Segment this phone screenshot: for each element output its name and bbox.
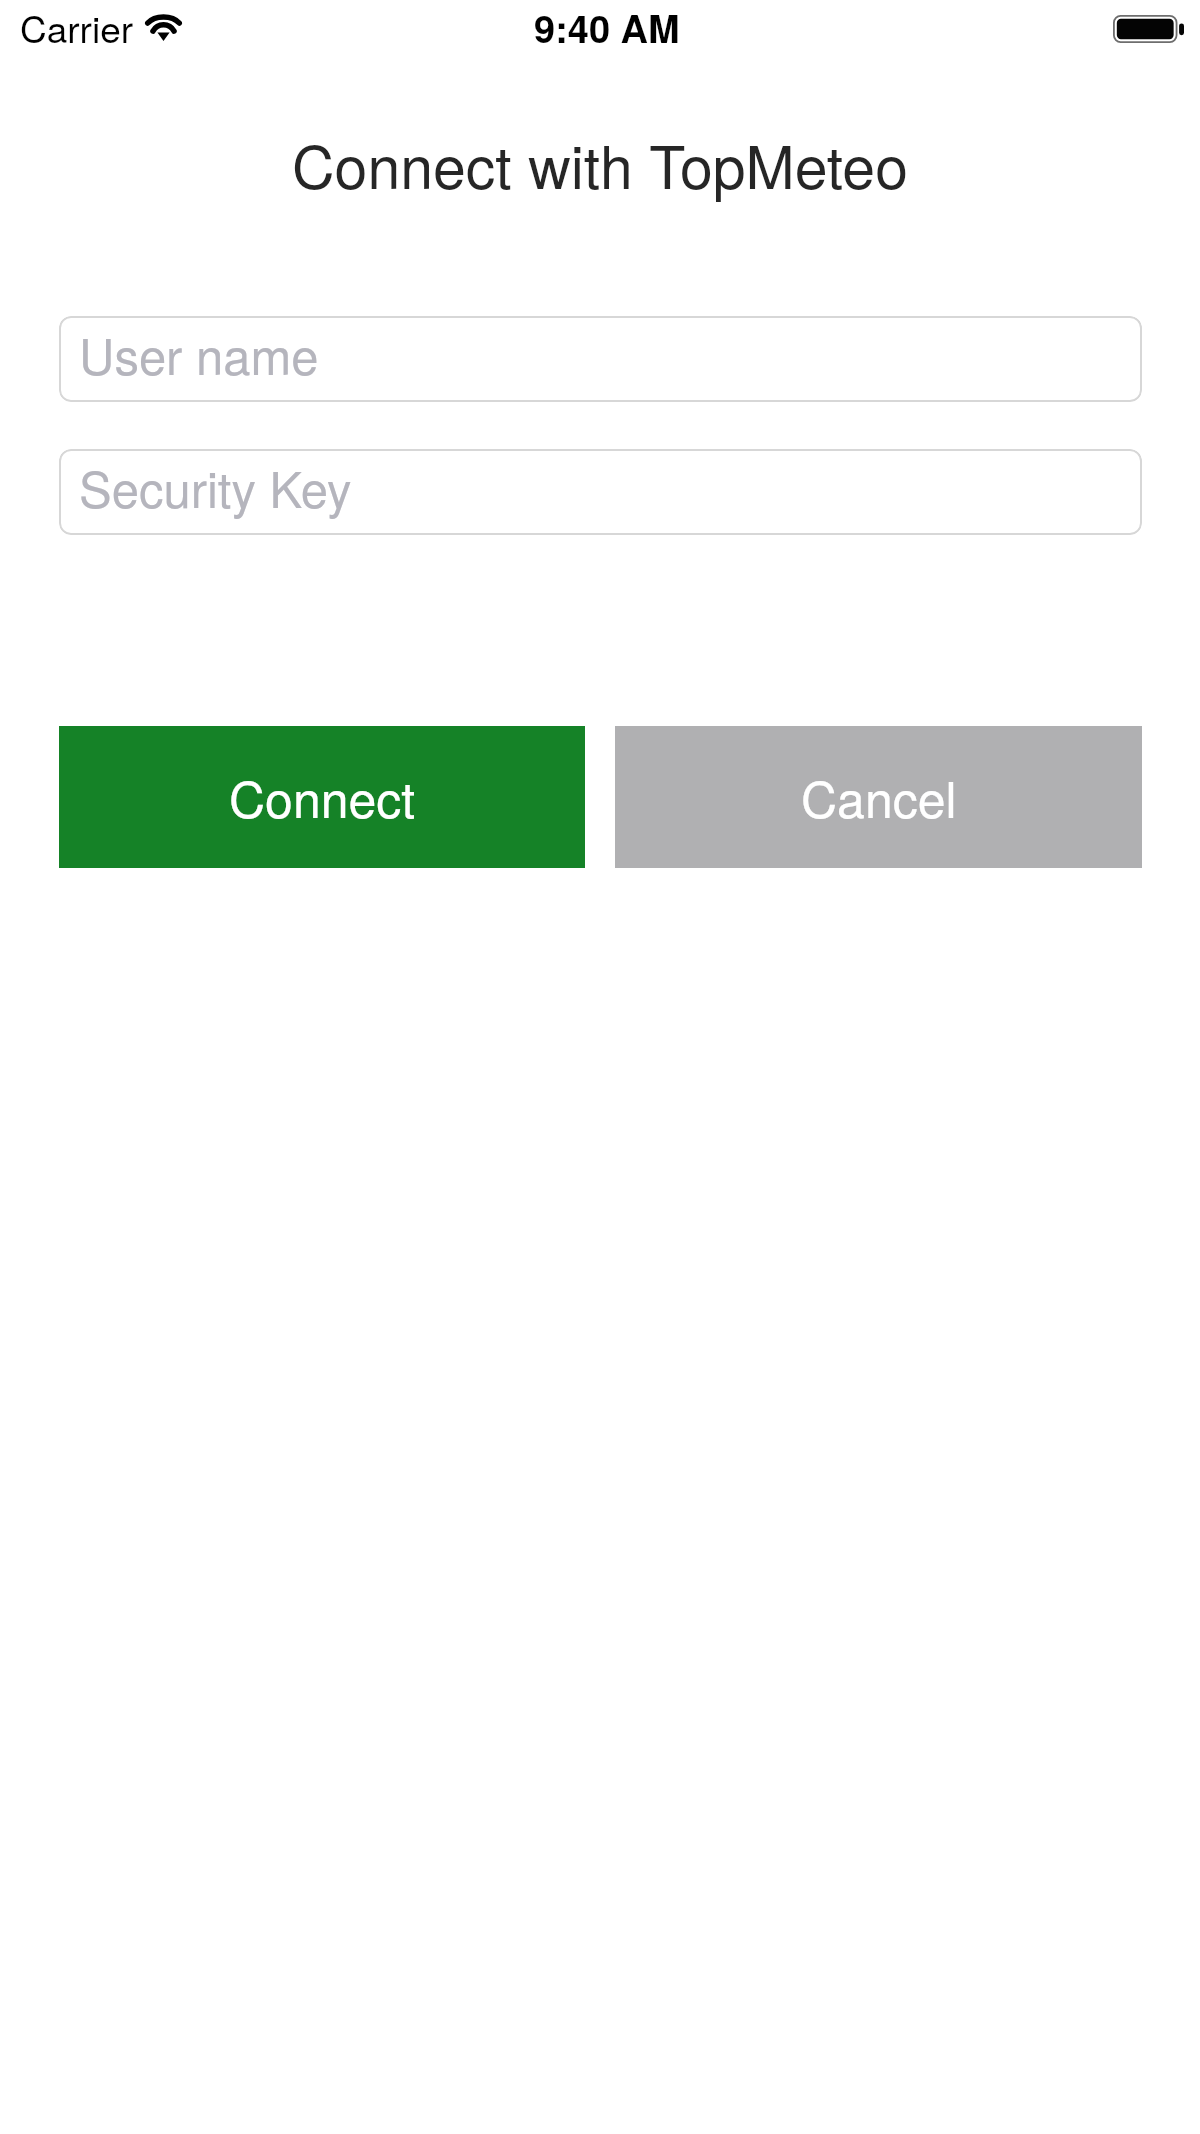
- staticText: Connect with TopMeteo: [0, 121, 1200, 205]
- staticText: Security Key: [79, 452, 352, 522]
- staticText: Cancel: [801, 761, 957, 833]
- button[interactable]: Cancel: [615, 726, 1142, 868]
- staticText: 9:40 AM: [534, 0, 680, 54]
- button[interactable]: User name: [59, 316, 1142, 402]
- button[interactable]: Security Key: [59, 449, 1142, 535]
- staticText: Carrier: [20, 1, 134, 54]
- staticText: User name: [79, 319, 319, 389]
- other: Wi-Fi signal: [145, 13, 182, 41]
- staticText: Connect: [229, 761, 416, 833]
- other: Battery full: [1113, 15, 1184, 43]
- button[interactable]: Connect: [59, 726, 585, 868]
